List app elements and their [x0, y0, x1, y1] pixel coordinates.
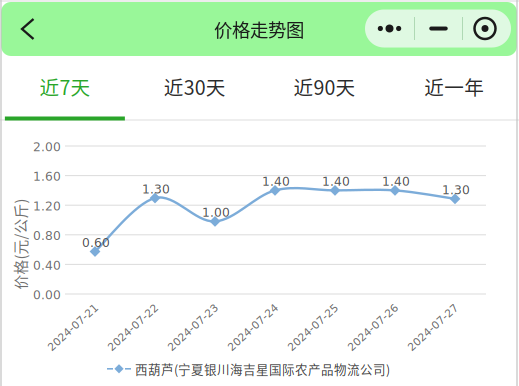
staticText: 1.30 [442, 183, 470, 197]
staticText: 近90天 [293, 72, 355, 101]
button[interactable]: More [365, 9, 414, 47]
staticText: 2024-07-26 [341, 321, 405, 334]
staticText: 2024-07-24 [221, 321, 285, 334]
staticText: 2024-07-27 [401, 321, 465, 334]
staticText: 2024-07-22 [101, 321, 165, 334]
staticText: 1.30 [142, 182, 170, 196]
button[interactable]: 西葫芦(宁夏银川海吉星国际农产品物流公司) [107, 360, 390, 378]
button[interactable]: 近一年 [389, 56, 519, 120]
staticText: 2024-07-21 [41, 321, 105, 334]
button[interactable]: 近7天 [0, 56, 130, 120]
staticText: 近30天 [164, 72, 226, 101]
staticText: 1.60 [33, 169, 61, 184]
staticText: 近一年 [424, 72, 484, 101]
staticText: 价格走势图 [214, 16, 304, 42]
button[interactable]: Close [463, 9, 511, 47]
staticText: 价格(元/公斤) [0, 233, 65, 255]
staticText: 西葫芦(宁夏银川海吉星国际农产品物流公司) [135, 360, 390, 378]
staticText: 0.80 [33, 229, 61, 243]
staticText: 1.40 [262, 174, 290, 189]
staticText: 近7天 [39, 72, 90, 101]
staticText: 0.00 [33, 288, 61, 302]
staticText: 0.60 [82, 236, 110, 250]
staticText: 1.00 [202, 205, 230, 220]
staticText: 1.40 [382, 174, 410, 189]
staticText: 2024-07-25 [281, 321, 345, 334]
button[interactable]: Minimize [415, 9, 462, 47]
staticText: 2024-07-23 [161, 321, 225, 334]
staticText: 2.00 [33, 140, 61, 154]
button[interactable]: Back [1, 9, 47, 49]
staticText: 0.40 [33, 258, 61, 273]
button[interactable]: 近30天 [130, 56, 260, 120]
staticText: 1.40 [322, 174, 350, 189]
button[interactable]: 近90天 [259, 56, 389, 120]
staticText: 1.20 [33, 199, 61, 213]
